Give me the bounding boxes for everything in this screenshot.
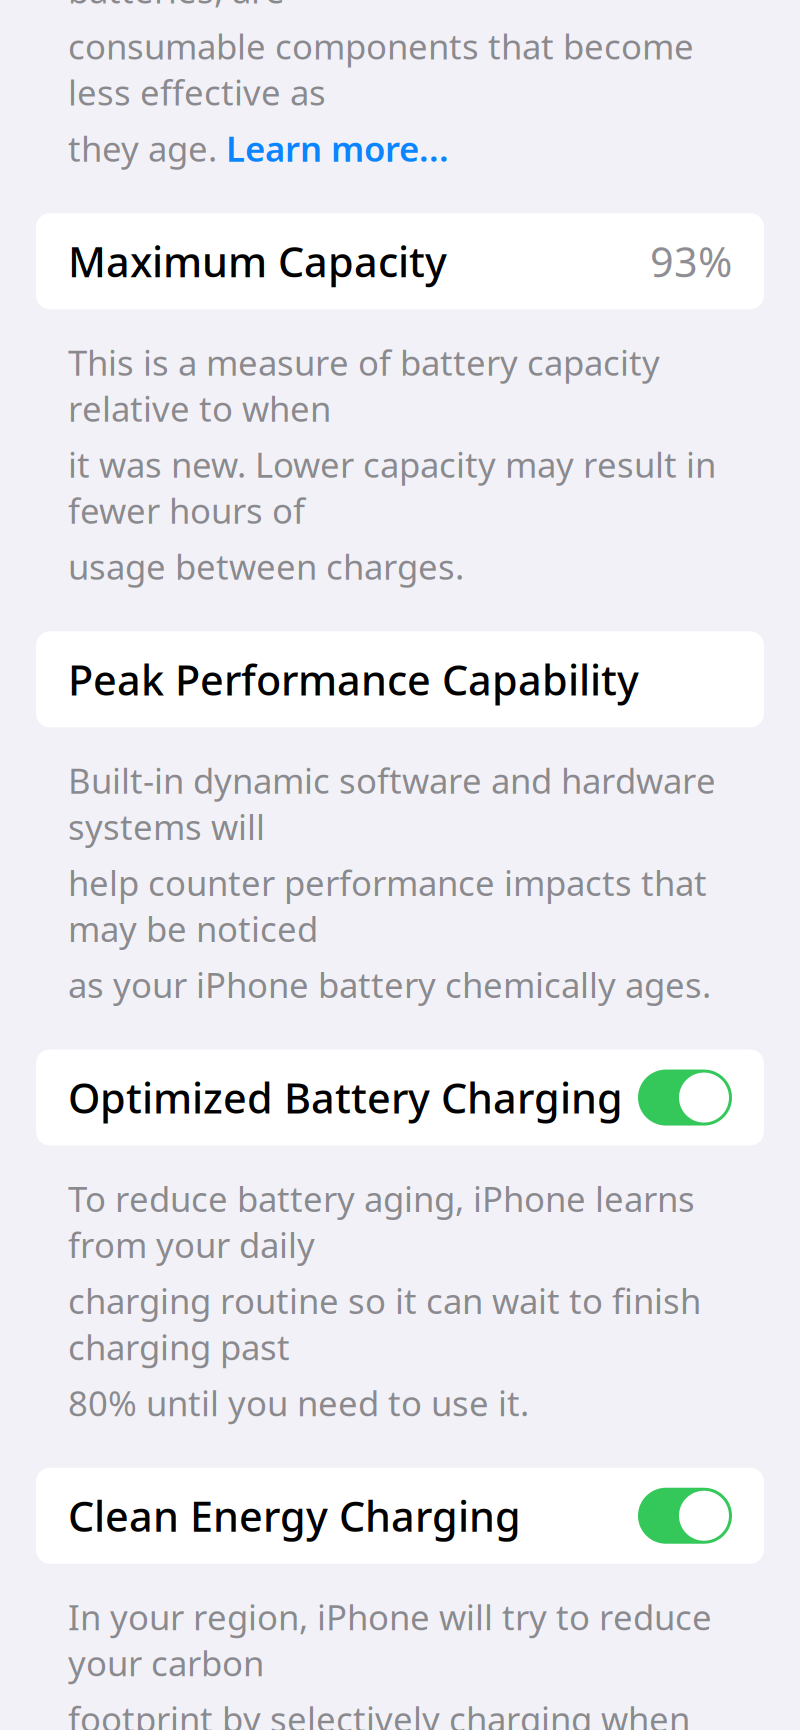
- staticText: help counter performance impacts that ma…: [68, 859, 707, 952]
- staticText: This is a measure of battery capacity re…: [68, 339, 660, 431]
- staticText: Phone batteries, like all rechargeable b…: [68, 0, 672, 13]
- staticText: 93%: [650, 234, 732, 289]
- button[interactable]: Peak Performance Capability: [36, 631, 764, 727]
- staticText: they age.: [68, 125, 226, 171]
- staticText: Optimized Battery Charging: [68, 1070, 623, 1125]
- staticText: Peak Performance Capability: [68, 652, 639, 707]
- staticText: Maximum Capacity: [68, 234, 447, 289]
- staticText: consumable components that become less e…: [68, 23, 694, 115]
- staticText: Learn more...: [226, 125, 449, 171]
- staticText: footprint by selectively charging when l…: [68, 1696, 690, 1730]
- button[interactable]: Maximum Capacity: [36, 213, 764, 309]
- staticText: as your iPhone battery chemically ages.: [68, 961, 711, 1007]
- staticText: 80% until you need to use it.: [68, 1380, 529, 1426]
- button[interactable]: Clean Energy Charging: [36, 1468, 764, 1564]
- button[interactable]: Optimized Battery Charging: [36, 1050, 764, 1146]
- staticText: it was new. Lower capacity may result in…: [68, 441, 716, 533]
- staticText: To reduce battery aging, iPhone learns f…: [68, 1176, 695, 1268]
- staticText: charging routine so it can wait to finis…: [68, 1278, 701, 1370]
- button[interactable]: Learn more...: [226, 125, 449, 171]
- staticText: Clean Energy Charging: [68, 1488, 521, 1543]
- staticText: In your region, iPhone will try to reduc…: [68, 1594, 712, 1686]
- staticText: usage between charges.: [68, 543, 464, 589]
- staticText: Built-in dynamic software and hardware s…: [68, 757, 716, 849]
